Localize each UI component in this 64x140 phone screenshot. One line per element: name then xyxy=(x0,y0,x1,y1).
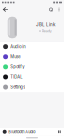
staticText: Spotify xyxy=(10,64,24,69)
button[interactable]: More options xyxy=(55,5,62,14)
button[interactable]: Bluetooth Audio xyxy=(0,128,64,135)
staticText: JBL Link xyxy=(36,22,55,27)
staticText: Ready xyxy=(42,29,52,33)
staticText: Settings xyxy=(10,84,25,89)
button[interactable]: Muse xyxy=(0,52,64,62)
staticText: TIDAL xyxy=(10,74,22,79)
staticText: Muse xyxy=(10,54,20,59)
button[interactable]: TIDAL xyxy=(0,72,64,82)
button[interactable]: Search xyxy=(46,5,55,14)
staticText: Bluetooth Audio xyxy=(8,129,35,134)
button[interactable]: Spotify xyxy=(0,62,64,72)
button[interactable]: Back xyxy=(0,5,10,14)
button[interactable]: Settings xyxy=(0,82,64,92)
button[interactable]: Audio in xyxy=(0,42,64,52)
staticText: Audio in xyxy=(10,44,25,49)
